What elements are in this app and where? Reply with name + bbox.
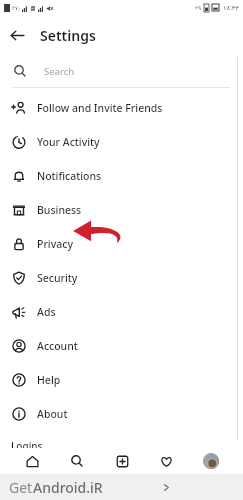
staticText: Ads [37, 305, 56, 319]
staticText: Your Activity [37, 135, 100, 149]
staticText: Follow and Invite Friends [37, 101, 163, 115]
button[interactable]: Your Activity [0, 125, 243, 159]
button[interactable]: Ads [0, 295, 243, 329]
button[interactable]: Help [0, 363, 243, 397]
staticText: Help [37, 373, 61, 387]
button[interactable]: About [0, 397, 243, 431]
staticText: Search [44, 65, 75, 78]
staticText: Settings [40, 26, 96, 45]
button[interactable]: Create new post [109, 448, 135, 474]
button[interactable]: Search [64, 448, 90, 474]
staticText: Notifications [37, 169, 102, 183]
staticText: Logins [11, 439, 43, 453]
button[interactable]: Home [19, 448, 45, 474]
button[interactable]: Profile [198, 448, 224, 474]
staticText: Security [37, 271, 78, 285]
button[interactable]: Privacy [0, 227, 243, 261]
staticText: Android.iR [33, 478, 103, 497]
staticText: Privacy [37, 237, 73, 251]
staticText: Account [37, 339, 78, 353]
button[interactable]: Follow and Invite Friends [0, 91, 243, 125]
staticText: Get [9, 478, 33, 497]
button[interactable]: Security [0, 261, 243, 295]
staticText: ۱۸:۳۳ [223, 3, 239, 12]
button[interactable]: Account [0, 329, 243, 363]
staticText: About [37, 407, 68, 421]
button[interactable]: Back [0, 18, 34, 52]
button[interactable]: Business [0, 193, 243, 227]
button[interactable]: Activity [153, 448, 179, 474]
staticText: ۲۹ [195, 5, 201, 11]
button[interactable]: Notifications [0, 159, 243, 193]
staticText: Business [37, 203, 82, 217]
button[interactable]: Search [0, 55, 243, 87]
staticText: ۲۷٫ [12, 5, 20, 11]
